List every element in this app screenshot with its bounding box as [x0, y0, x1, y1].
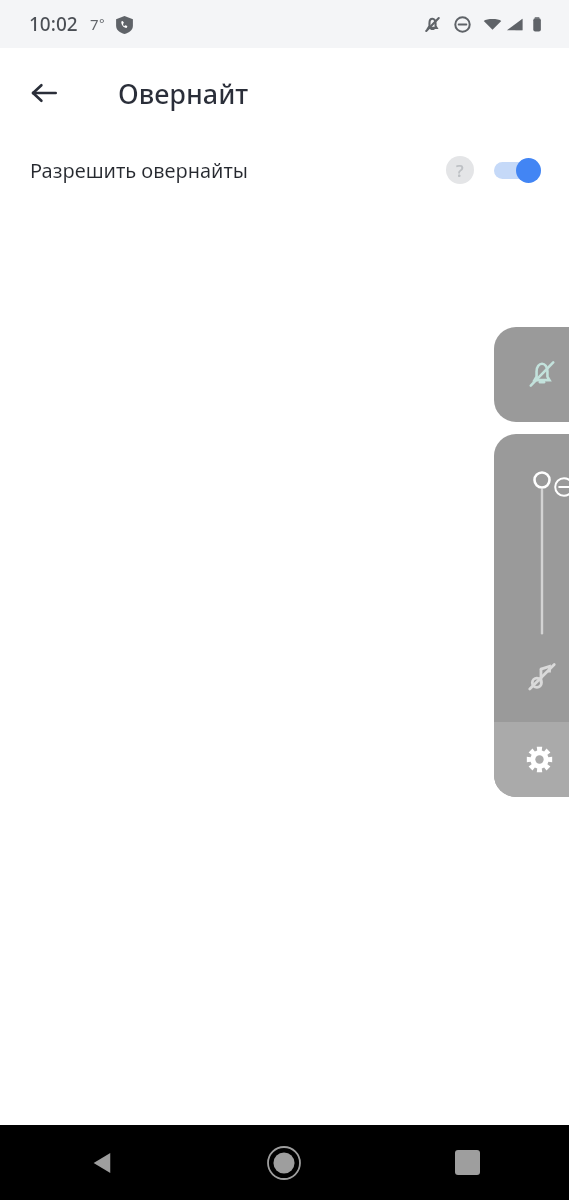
button[interactable]: Recent apps — [379, 1125, 569, 1200]
button[interactable]: Settings — [494, 722, 569, 797]
staticText: ? — [456, 159, 464, 182]
button[interactable]: Back — [0, 1125, 189, 1200]
button[interactable]: Back — [16, 65, 72, 121]
staticText: 10:02 — [29, 11, 78, 37]
button[interactable]: Help — [438, 148, 482, 192]
button[interactable]: Home — [189, 1125, 379, 1200]
button[interactable]: Ringer muted — [494, 327, 569, 422]
button[interactable]: Toggle overnight — [492, 148, 550, 192]
staticText: ° — [99, 14, 105, 32]
button[interactable]: Разрешить овернайты — [0, 138, 569, 202]
staticText: Разрешить овернайты — [30, 157, 248, 184]
button[interactable]: Volume slider — [527, 464, 557, 644]
staticText: 7 — [90, 14, 99, 34]
staticText: Овернайт — [118, 75, 249, 112]
